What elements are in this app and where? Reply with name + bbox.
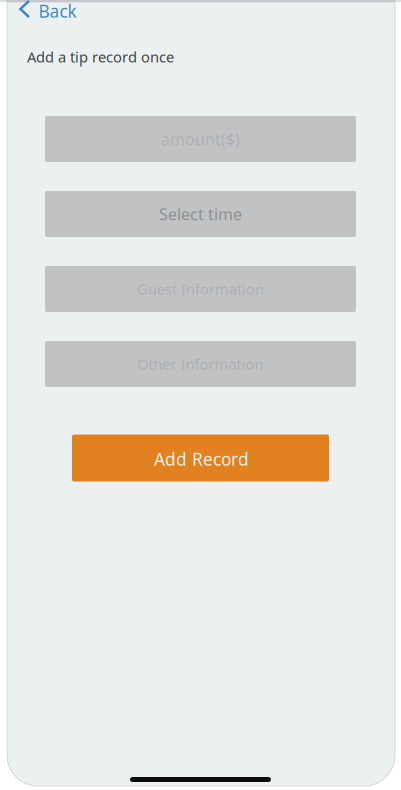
staticText: Add a tip record once — [27, 47, 174, 66]
staticText: Add Record — [154, 447, 249, 470]
button[interactable]: Back — [0, 0, 88, 22]
staticText: amount($) — [161, 128, 240, 150]
staticText: Select time — [159, 203, 242, 225]
staticText: Back — [38, 0, 76, 22]
button[interactable]: Add Record — [72, 434, 329, 481]
staticText: Other Information — [137, 354, 263, 374]
button[interactable]: Select time — [45, 191, 356, 237]
staticText: Guest Information — [137, 279, 264, 299]
